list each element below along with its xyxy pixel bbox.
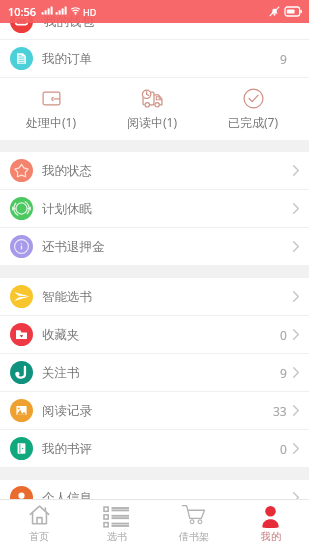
staticText: 0 <box>280 327 287 343</box>
staticText: 借书架 <box>179 530 209 543</box>
button[interactable]: 我的订单 <box>0 40 309 77</box>
button[interactable]: 我的书评 <box>0 430 309 467</box>
staticText: 阅读中(1) <box>127 114 178 130</box>
staticText: 我的状态 <box>42 163 92 179</box>
staticText: 我的订单 <box>42 51 92 67</box>
staticText: 收藏夹 <box>42 327 80 343</box>
button[interactable]: 个人信息 <box>0 480 309 499</box>
button[interactable]: 首页 <box>0 500 78 550</box>
button[interactable]: 收藏夹 <box>0 316 309 353</box>
staticText: 9 <box>280 365 287 381</box>
staticText: 关注书 <box>42 365 80 381</box>
staticText: 已完成(7) <box>228 114 279 130</box>
button[interactable]: 已完成(7) <box>203 78 304 140</box>
staticText: 我的钱包 <box>44 14 94 30</box>
staticText: HD <box>83 6 97 18</box>
button[interactable]: 智能选书 <box>0 278 309 315</box>
staticText: 处理中(1) <box>26 114 77 130</box>
staticText: 个人信息 <box>42 490 92 499</box>
staticText: 首页 <box>29 530 49 543</box>
staticText: 计划休眠 <box>42 201 92 217</box>
staticText: 选书 <box>107 530 127 543</box>
button[interactable]: 处理中(1) <box>0 78 102 140</box>
button[interactable]: 借书架 <box>155 500 232 550</box>
staticText: 0 <box>280 441 287 457</box>
staticText: 阅读记录 <box>42 403 92 419</box>
button[interactable]: 还书退押金 <box>0 228 309 265</box>
staticText: 我的书评 <box>42 441 92 457</box>
staticText: 我的 <box>261 530 281 543</box>
button[interactable]: 计划休眠 <box>0 190 309 227</box>
button[interactable]: 阅读中(1) <box>102 78 203 140</box>
button[interactable]: 阅读记录 <box>0 392 309 429</box>
button[interactable]: 选书 <box>78 500 155 550</box>
button[interactable]: 关注书 <box>0 354 309 391</box>
staticText: 9 <box>280 51 287 67</box>
button[interactable]: 我的 <box>232 500 309 550</box>
staticText: 10:56 <box>8 4 37 19</box>
staticText: 智能选书 <box>42 289 92 305</box>
button[interactable]: 我的状态 <box>0 152 309 189</box>
staticText: 还书退押金 <box>42 239 105 255</box>
staticText: 33 <box>273 403 287 419</box>
